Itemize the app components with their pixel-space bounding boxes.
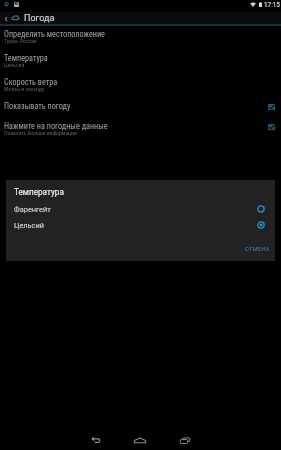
button[interactable]: Показывать погоду [0,99,281,119]
staticText: ОТМЕНА [245,246,270,253]
staticText: Цельсий [4,62,25,69]
staticText: Нажмите на погодные данные [4,121,108,131]
button[interactable]: Скорость ветра [0,75,281,99]
staticText: 17:15 [264,1,280,9]
staticText: Температура [4,53,48,63]
staticText: Туран, Россия [4,38,37,45]
button[interactable]: Цельсий [6,217,275,233]
staticText: Показывать погоду [4,101,71,111]
button[interactable]: Фаренгейт [6,201,275,217]
staticText: Показать больше информации [4,130,77,137]
staticText: Метры в секунду [4,86,45,93]
staticText: Скорость ветра [4,77,58,87]
staticText: Цельсий [14,221,45,230]
button[interactable]: Определить местоположение [0,27,281,51]
button[interactable]: Нажмите на погодные данные [0,119,281,143]
button[interactable]: Back [80,428,110,450]
button[interactable]: Back [0,12,11,26]
staticText: Определить местоположение [4,29,105,39]
button[interactable]: Home [125,428,155,450]
staticText: Температура [14,187,64,197]
button[interactable]: Температура [0,51,281,75]
staticText: Фаренгейт [14,205,51,214]
button[interactable]: Recents [170,429,200,450]
button[interactable]: ОТМЕНА [240,243,274,256]
staticText: Погода [24,13,55,24]
